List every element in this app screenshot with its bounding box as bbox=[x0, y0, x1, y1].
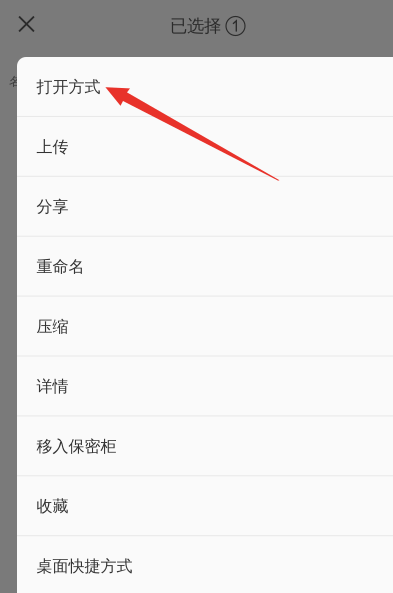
button[interactable]: 详情 bbox=[17, 356, 393, 416]
button[interactable]: 压缩 bbox=[17, 297, 393, 356]
button[interactable]: 桌面快捷方式 bbox=[17, 536, 393, 593]
button[interactable]: 打开方式 bbox=[17, 57, 393, 117]
staticText: 桌面快捷方式 bbox=[36, 556, 132, 576]
button[interactable]: 分享 bbox=[17, 177, 393, 237]
button[interactable]: 移入保密柜 bbox=[17, 416, 393, 476]
button[interactable]: 重命名 bbox=[17, 237, 393, 297]
button[interactable]: 收藏 bbox=[17, 476, 393, 536]
staticText: 详情 bbox=[36, 377, 68, 396]
button[interactable]: 上传 bbox=[17, 117, 393, 177]
staticText: 重命名 bbox=[36, 257, 84, 276]
staticText: 移入保密柜 bbox=[36, 436, 116, 456]
staticText: 分享 bbox=[36, 197, 68, 217]
button[interactable]: Close bbox=[4, 2, 48, 46]
staticText: 打开方式 bbox=[36, 77, 100, 97]
staticText: 已选择 bbox=[170, 15, 221, 37]
staticText: 上传 bbox=[36, 137, 68, 157]
staticText: 压缩 bbox=[36, 317, 68, 336]
staticText: 收藏 bbox=[36, 496, 68, 516]
